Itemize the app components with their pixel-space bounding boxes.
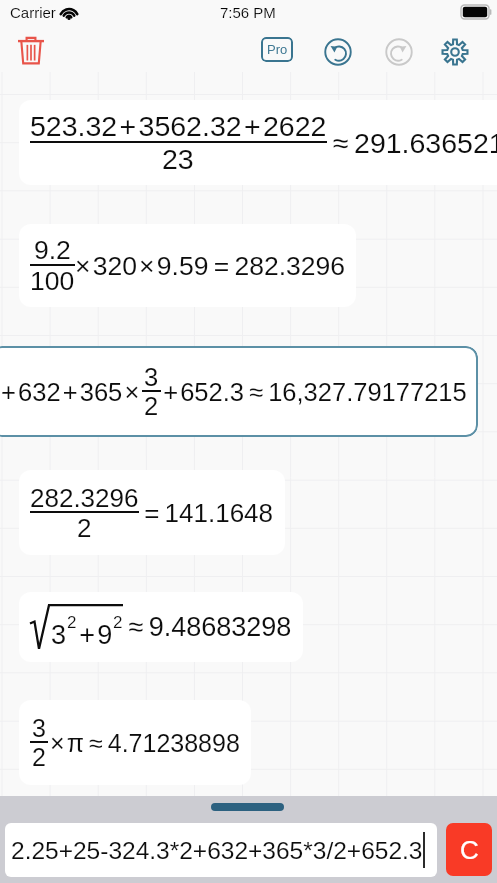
button[interactable]: + 632 + 365 × xyxy=(0,346,478,437)
staticText: Pro xyxy=(267,42,288,57)
staticText: 3 xyxy=(51,620,67,650)
staticText: + 652.3 ≈ 16,327.79177215 xyxy=(161,378,467,406)
button[interactable]: 3 xyxy=(19,700,251,785)
staticText: 100 xyxy=(30,266,75,296)
button[interactable]: Undo xyxy=(320,34,356,70)
staticText: + 632 + 365 × xyxy=(1,378,142,406)
staticText: 2 xyxy=(67,613,77,632)
staticText: 2 xyxy=(32,743,46,771)
staticText: 2 xyxy=(144,392,159,420)
staticText: 9.2 xyxy=(34,235,71,265)
button[interactable]: 3 xyxy=(19,592,303,662)
staticText: ≈ 9.48683298 xyxy=(123,612,292,642)
staticText: 2 xyxy=(113,613,123,632)
staticText: + 9 xyxy=(77,620,113,650)
staticText: 523.32 + 3562.32 + 2622 xyxy=(30,110,327,142)
staticText: 23 xyxy=(162,143,194,175)
staticText: 282.3296 xyxy=(30,483,139,512)
staticText: 2 xyxy=(77,513,92,542)
staticText: 3 xyxy=(32,714,46,742)
staticText: × 320 × 9.59 = 282.3296 xyxy=(75,251,345,281)
staticText: 2.25+25-324.3*2+632+365*3/2+652.3 xyxy=(11,837,423,864)
button[interactable]: 9.2 xyxy=(19,224,356,307)
button[interactable]: Resize keypad xyxy=(211,803,284,811)
button[interactable]: Redo xyxy=(381,34,417,70)
button[interactable]: Settings xyxy=(437,34,473,70)
button[interactable]: 282.3296 xyxy=(19,470,285,555)
staticText: × π ≈ 4.71238898 xyxy=(48,729,240,757)
staticText: 7:56 PM xyxy=(220,4,276,21)
staticText: ≈ 291.63652174 xyxy=(327,127,497,159)
staticText: 3 xyxy=(144,363,159,391)
staticText: = 141.1648 xyxy=(139,498,274,527)
button[interactable]: C xyxy=(446,823,492,876)
staticText: Carrier xyxy=(10,4,56,21)
button[interactable]: 2.25+25-324.3*2+632+365*3/2+652.3 xyxy=(5,823,437,877)
staticText: C xyxy=(460,835,479,864)
button[interactable]: 523.32 + 3562.32 + 2622 xyxy=(19,100,497,185)
button[interactable]: Pro xyxy=(261,37,293,62)
button[interactable]: Clear history xyxy=(11,29,51,69)
